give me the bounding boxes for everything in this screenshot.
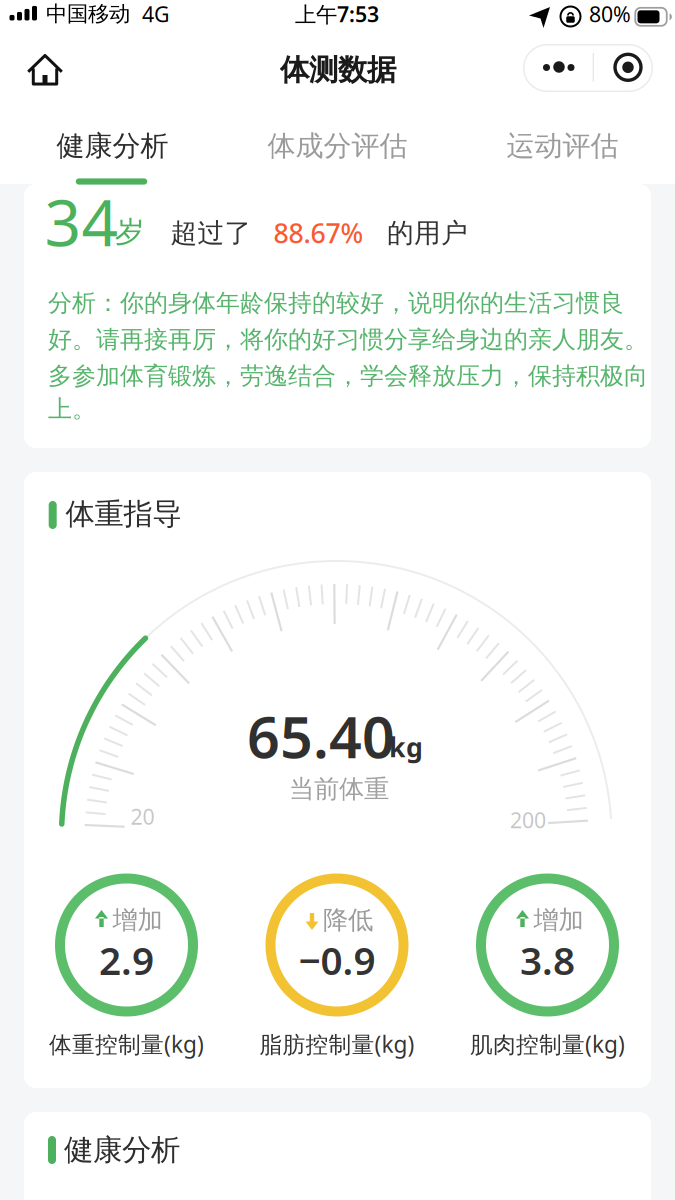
staticText: 肌肉控制量(kg) <box>470 1029 625 1059</box>
staticText: 88.67% <box>273 215 363 251</box>
staticText: 上。 <box>48 394 96 424</box>
staticText: 3.8 <box>520 934 575 986</box>
staticText: −0.9 <box>298 934 375 986</box>
staticText: 65.40 <box>247 698 395 774</box>
staticText: 超过了 <box>170 217 251 249</box>
staticText: 34 <box>44 179 118 264</box>
button[interactable] <box>592 45 652 91</box>
button[interactable]: 体成分评估 <box>225 108 450 184</box>
staticText: 健康分析 <box>56 129 168 163</box>
staticText: 分析：你的身体年龄保持的较好，说明你的生活习惯良 <box>48 288 624 318</box>
staticText: 当前体重 <box>289 773 389 804</box>
staticText: 运动评估 <box>506 129 618 163</box>
staticText: 好。请再接再厉，将你的好习惯分享给身边的亲人朋友。 <box>48 325 648 354</box>
staticText: 中国移动 <box>46 1 130 27</box>
staticText: 体测数据 <box>280 52 396 88</box>
staticText: 的用户 <box>387 217 468 249</box>
button[interactable]: 运动评估 <box>450 108 675 184</box>
staticText: 健康分析 <box>64 1132 180 1168</box>
staticText: kg <box>389 729 423 765</box>
staticText: 多参加体育锻炼，劳逸结合，学会释放压力，保持积极向 <box>48 361 648 391</box>
button[interactable] <box>526 45 588 91</box>
staticText: 200 <box>510 806 546 834</box>
staticText: 体成分评估 <box>267 129 407 163</box>
staticText: 降低 <box>323 904 373 935</box>
staticText: 80% <box>589 0 631 28</box>
staticText: 4G <box>142 0 170 28</box>
staticText: 20 <box>130 802 154 831</box>
staticText: 上午7:53 <box>295 0 379 28</box>
staticText: 增加 <box>112 904 162 935</box>
button[interactable]: 健康分析 <box>0 108 225 184</box>
staticText: 脂肪控制量(kg) <box>259 1029 414 1059</box>
staticText: 增加 <box>533 904 583 935</box>
button[interactable] <box>23 46 67 90</box>
staticText: 体重指导 <box>65 496 181 532</box>
staticText: 体重控制量(kg) <box>49 1029 204 1059</box>
staticText: 岁 <box>115 214 144 250</box>
staticText: 2.9 <box>99 934 154 986</box>
